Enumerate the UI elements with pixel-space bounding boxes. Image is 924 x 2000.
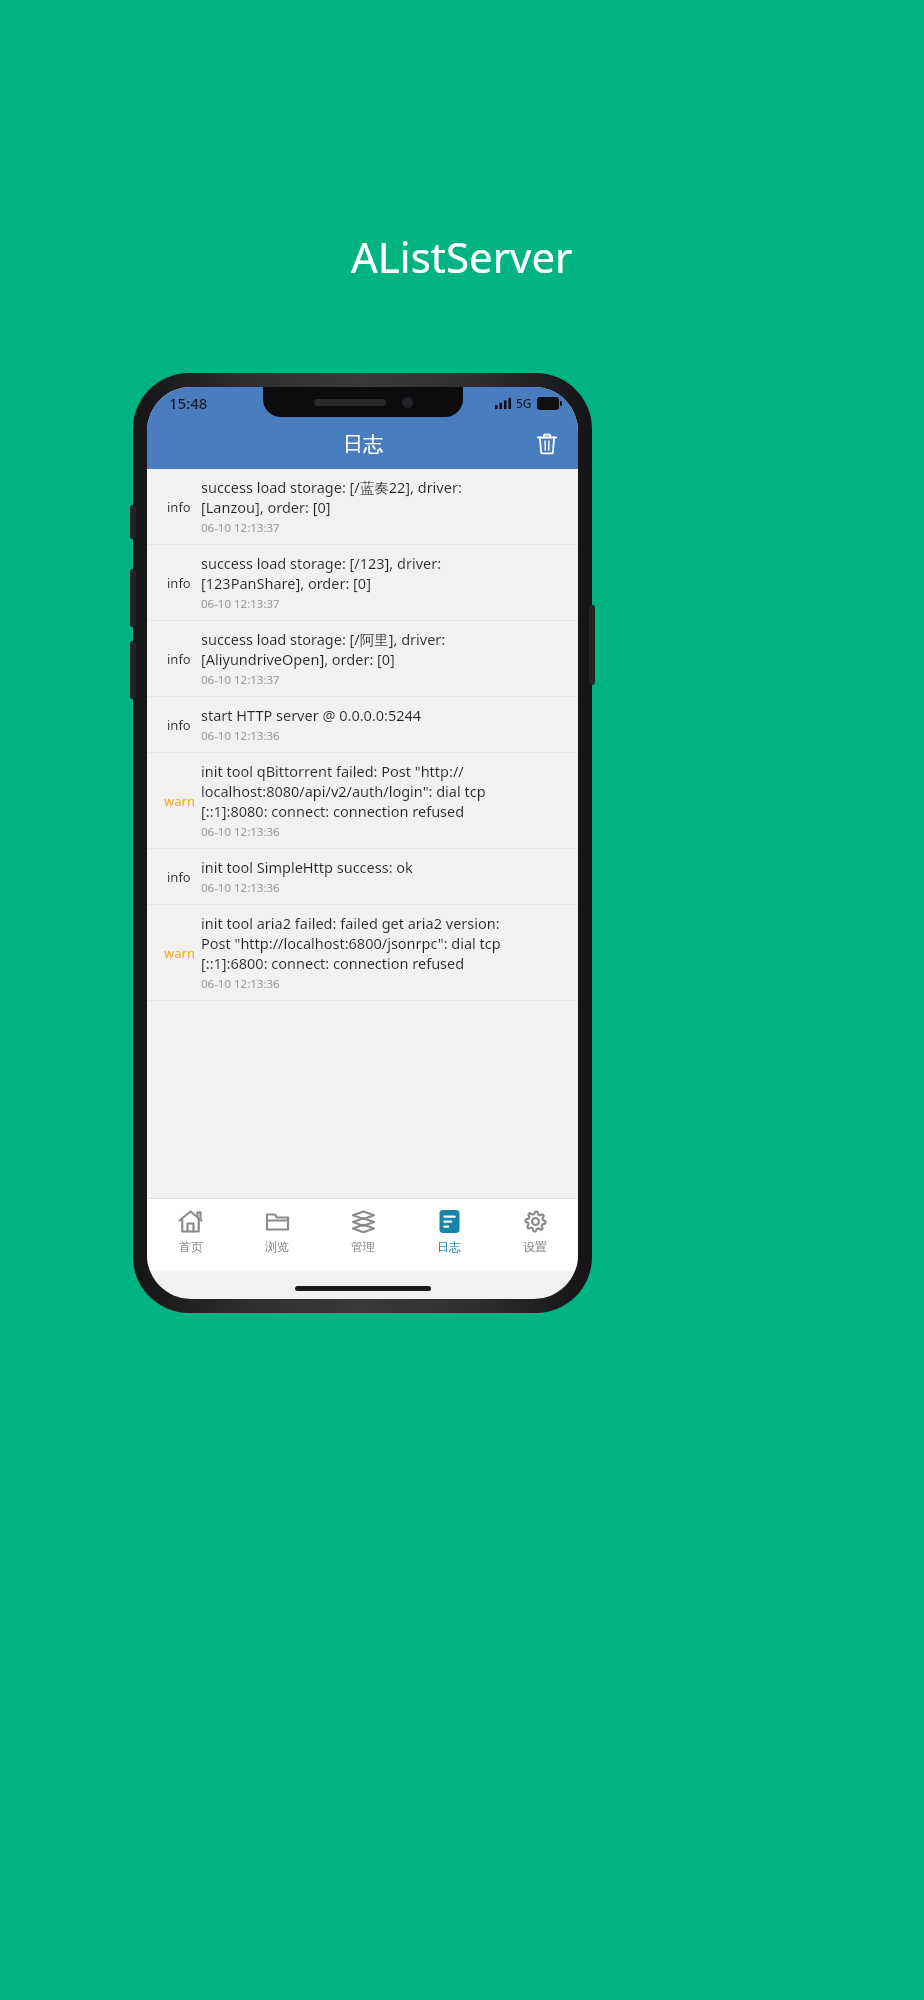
button[interactable]: info [147,697,578,752]
staticText: [::1]:8080: connect: connection refused [201,801,465,821]
staticText: 06-10 12:13:37 [201,596,280,612]
staticText: success load storage: [/蓝奏22], driver: [201,477,462,497]
button[interactable]: 浏览 [234,1199,320,1271]
button[interactable]: info [147,621,578,696]
staticText: AListServer [351,228,573,285]
staticText: 06-10 12:13:37 [201,672,280,688]
staticText: 日志 [437,1239,461,1254]
staticText: info [167,650,191,668]
staticText: 15:48 [169,393,208,413]
button[interactable]: warn [147,753,578,848]
staticText: 06-10 12:13:37 [201,520,280,536]
staticText: success load storage: [/阿里], driver: [201,629,446,649]
staticText: [Lanzou], order: [0] [201,497,331,517]
staticText: 管理 [351,1239,375,1254]
button[interactable]: 首页 [147,1199,234,1271]
staticText: start HTTP server @ 0.0.0.0:5244 [201,705,422,725]
staticText: info [167,716,191,734]
staticText: 06-10 12:13:36 [201,880,280,896]
staticText: info [167,498,191,516]
staticText: 06-10 12:13:36 [201,728,280,744]
button[interactable]: 管理 [320,1199,406,1271]
staticText: 5G [516,395,532,411]
staticText: 06-10 12:13:36 [201,976,280,992]
staticText: info [167,574,191,592]
button[interactable]: Clear logs [526,423,568,465]
staticText: 日志 [343,432,383,457]
staticText: 06-10 12:13:36 [201,824,280,840]
staticText: [::1]:6800: connect: connection refused [201,953,465,973]
button[interactable]: 日志 [406,1199,492,1271]
staticText: info [167,868,191,886]
staticText: 设置 [523,1239,547,1254]
button[interactable]: 设置 [492,1199,578,1271]
staticText: [AliyundriveOpen], order: [0] [201,649,395,669]
button[interactable]: info [147,545,578,620]
staticText: warn [164,792,195,810]
staticText: [123PanShare], order: [0] [201,573,371,593]
staticText: localhost:8080/api/v2/auth/login": dial … [201,781,486,801]
staticText: 浏览 [265,1239,289,1254]
button[interactable]: info [147,849,578,904]
staticText: init tool aria2 failed: failed get aria2… [201,913,500,933]
staticText: Post "http://localhost:6800/jsonrpc": di… [201,933,501,953]
button[interactable]: warn [147,905,578,1000]
button[interactable]: info [147,469,578,544]
staticText: init tool SimpleHttp success: ok [201,857,413,877]
staticText: success load storage: [/123], driver: [201,553,442,573]
staticText: warn [164,944,195,962]
staticText: 首页 [179,1239,203,1254]
staticText: init tool qBittorrent failed: Post "http… [201,761,464,781]
